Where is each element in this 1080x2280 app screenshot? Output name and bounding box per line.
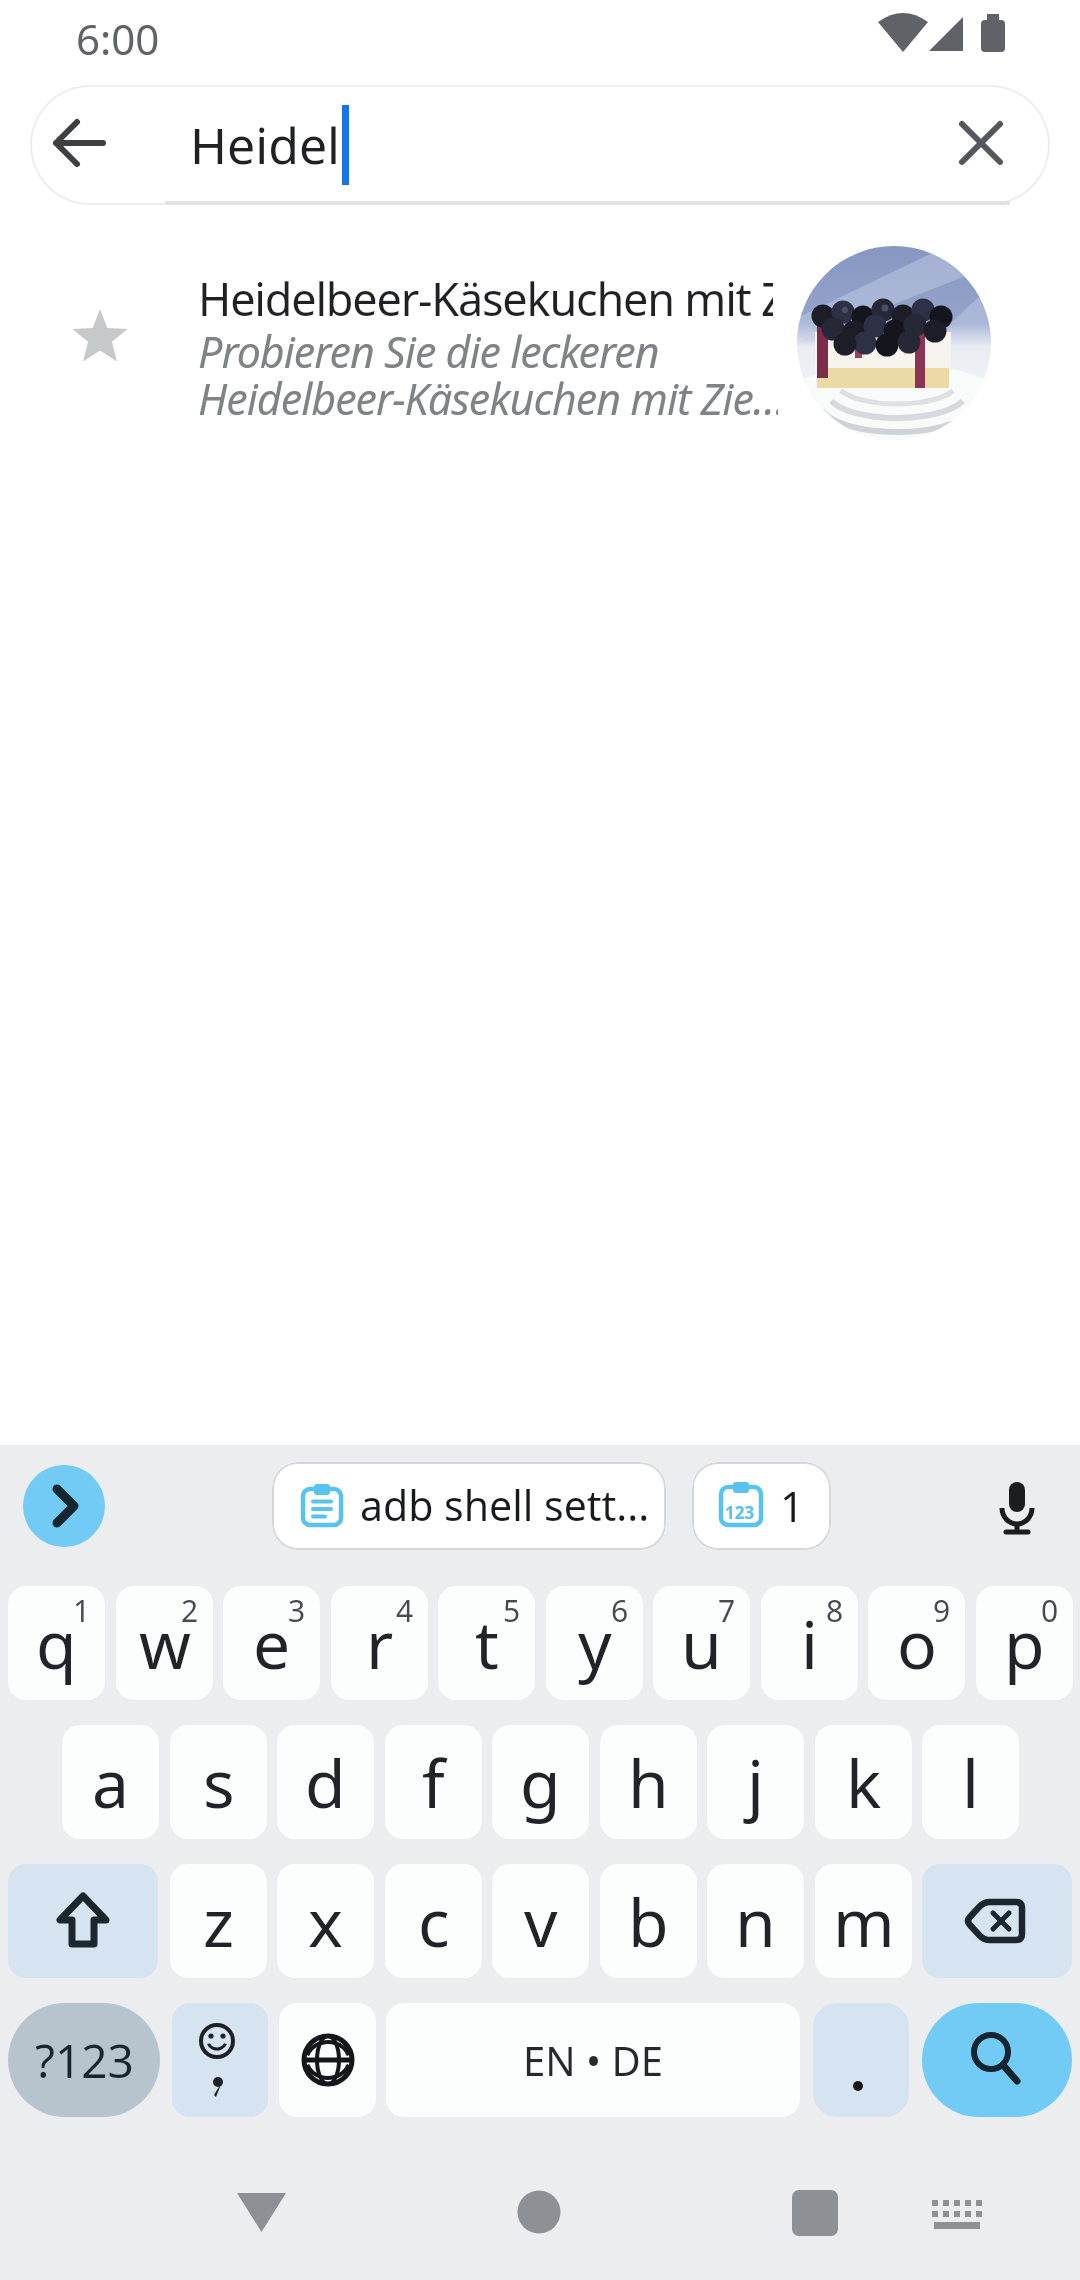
staticText: i (801, 1598, 819, 1688)
button[interactable]: l (922, 1725, 1019, 1839)
staticText: 6 (611, 1590, 629, 1631)
staticText: s (203, 1737, 235, 1827)
button[interactable]: p (976, 1586, 1073, 1700)
button[interactable]: t (438, 1586, 535, 1700)
button[interactable]: b (600, 1864, 697, 1978)
staticText: g (520, 1737, 561, 1827)
staticText: 123 (725, 1501, 755, 1524)
button[interactable]: Heidelbeer-Käsekuchen mit Zie… (0, 238, 1080, 450)
staticText: 1 (780, 1477, 805, 1534)
staticText: 5 (503, 1590, 521, 1631)
button[interactable]: x (277, 1864, 374, 1978)
staticText: 7 (718, 1590, 736, 1631)
staticText: 0 (1041, 1590, 1059, 1631)
staticText: Probieren Sie die leckeren (198, 322, 778, 381)
button[interactable] (279, 2003, 376, 2117)
button[interactable]: e (223, 1586, 320, 1700)
button[interactable]: i (761, 1586, 858, 1700)
button[interactable] (200, 2160, 320, 2260)
button[interactable]: y (546, 1586, 643, 1700)
button[interactable]: EN • DE (386, 2003, 800, 2117)
staticText: q (36, 1598, 77, 1688)
staticText: w (139, 1598, 191, 1688)
staticText: 2 (181, 1590, 199, 1631)
staticText: ?123 (35, 2029, 134, 2092)
staticText: l (962, 1737, 980, 1827)
staticText: u (681, 1598, 722, 1688)
staticText: a (92, 1737, 130, 1827)
button[interactable]: r (331, 1586, 428, 1700)
staticText: z (203, 1876, 235, 1966)
button[interactable]: a (62, 1725, 159, 1839)
staticText: v (524, 1876, 558, 1966)
staticText: m (833, 1876, 895, 1966)
button[interactable]: s (170, 1725, 267, 1839)
staticText: EN • DE (523, 2033, 663, 2087)
staticText: h (628, 1737, 669, 1827)
staticText: k (846, 1737, 882, 1827)
button[interactable]: q (8, 1586, 105, 1700)
button[interactable]: u (653, 1586, 750, 1700)
staticText: Heidelbeer-Käsekuchen mit Zie… (198, 369, 778, 428)
staticText: 9 (933, 1590, 951, 1631)
button[interactable] (910, 2160, 1010, 2260)
staticText: p (1004, 1598, 1045, 1688)
button[interactable]: ?123 (8, 2003, 160, 2117)
staticText: Heidelbeer-Käsekuchen mit Zie… (198, 268, 773, 329)
button[interactable]: g (492, 1725, 589, 1839)
staticText: c (418, 1876, 450, 1966)
button[interactable]: k (815, 1725, 912, 1839)
button[interactable]: f (385, 1725, 482, 1839)
staticText: n (735, 1876, 776, 1966)
staticText: r (366, 1598, 394, 1688)
button[interactable]: w (116, 1586, 213, 1700)
button[interactable] (8, 1864, 158, 1978)
staticText: b (628, 1876, 669, 1966)
staticText: t (475, 1598, 499, 1688)
button[interactable]: 123 (692, 1462, 831, 1550)
button[interactable]: m (815, 1864, 912, 1978)
staticText: y (578, 1598, 612, 1688)
staticText: o (897, 1598, 937, 1688)
button[interactable]: o (868, 1586, 965, 1700)
button[interactable] (999, 1480, 1035, 1536)
button[interactable] (922, 1864, 1072, 1978)
button[interactable]: n (707, 1864, 804, 1978)
button[interactable]: d (277, 1725, 374, 1839)
button[interactable] (48, 113, 108, 173)
staticText: 3 (288, 1590, 306, 1631)
staticText: x (308, 1876, 343, 1966)
button[interactable]: j (707, 1725, 804, 1839)
staticText: 6:00 (76, 10, 160, 67)
button[interactable]: c (385, 1864, 482, 1978)
staticText: e (253, 1598, 291, 1688)
button[interactable] (957, 119, 1005, 167)
staticText: 4 (396, 1590, 414, 1631)
button[interactable] (172, 2003, 268, 2117)
button[interactable]: v (492, 1864, 589, 1978)
staticText: 1 (73, 1590, 91, 1631)
button[interactable] (480, 2160, 600, 2260)
button[interactable]: adb shell sett... (272, 1462, 666, 1550)
staticText: f (422, 1737, 445, 1827)
button[interactable]: h (600, 1725, 697, 1839)
staticText: 8 (826, 1590, 844, 1631)
button[interactable]: z (170, 1864, 267, 1978)
button[interactable] (922, 2003, 1072, 2117)
button[interactable] (23, 1465, 105, 1547)
staticText: j (747, 1737, 765, 1827)
staticText: adb shell sett... (360, 1477, 650, 1533)
button[interactable] (760, 2160, 880, 2260)
staticText: Heidel (190, 111, 340, 179)
button[interactable] (813, 2003, 909, 2117)
staticText: d (305, 1737, 346, 1827)
